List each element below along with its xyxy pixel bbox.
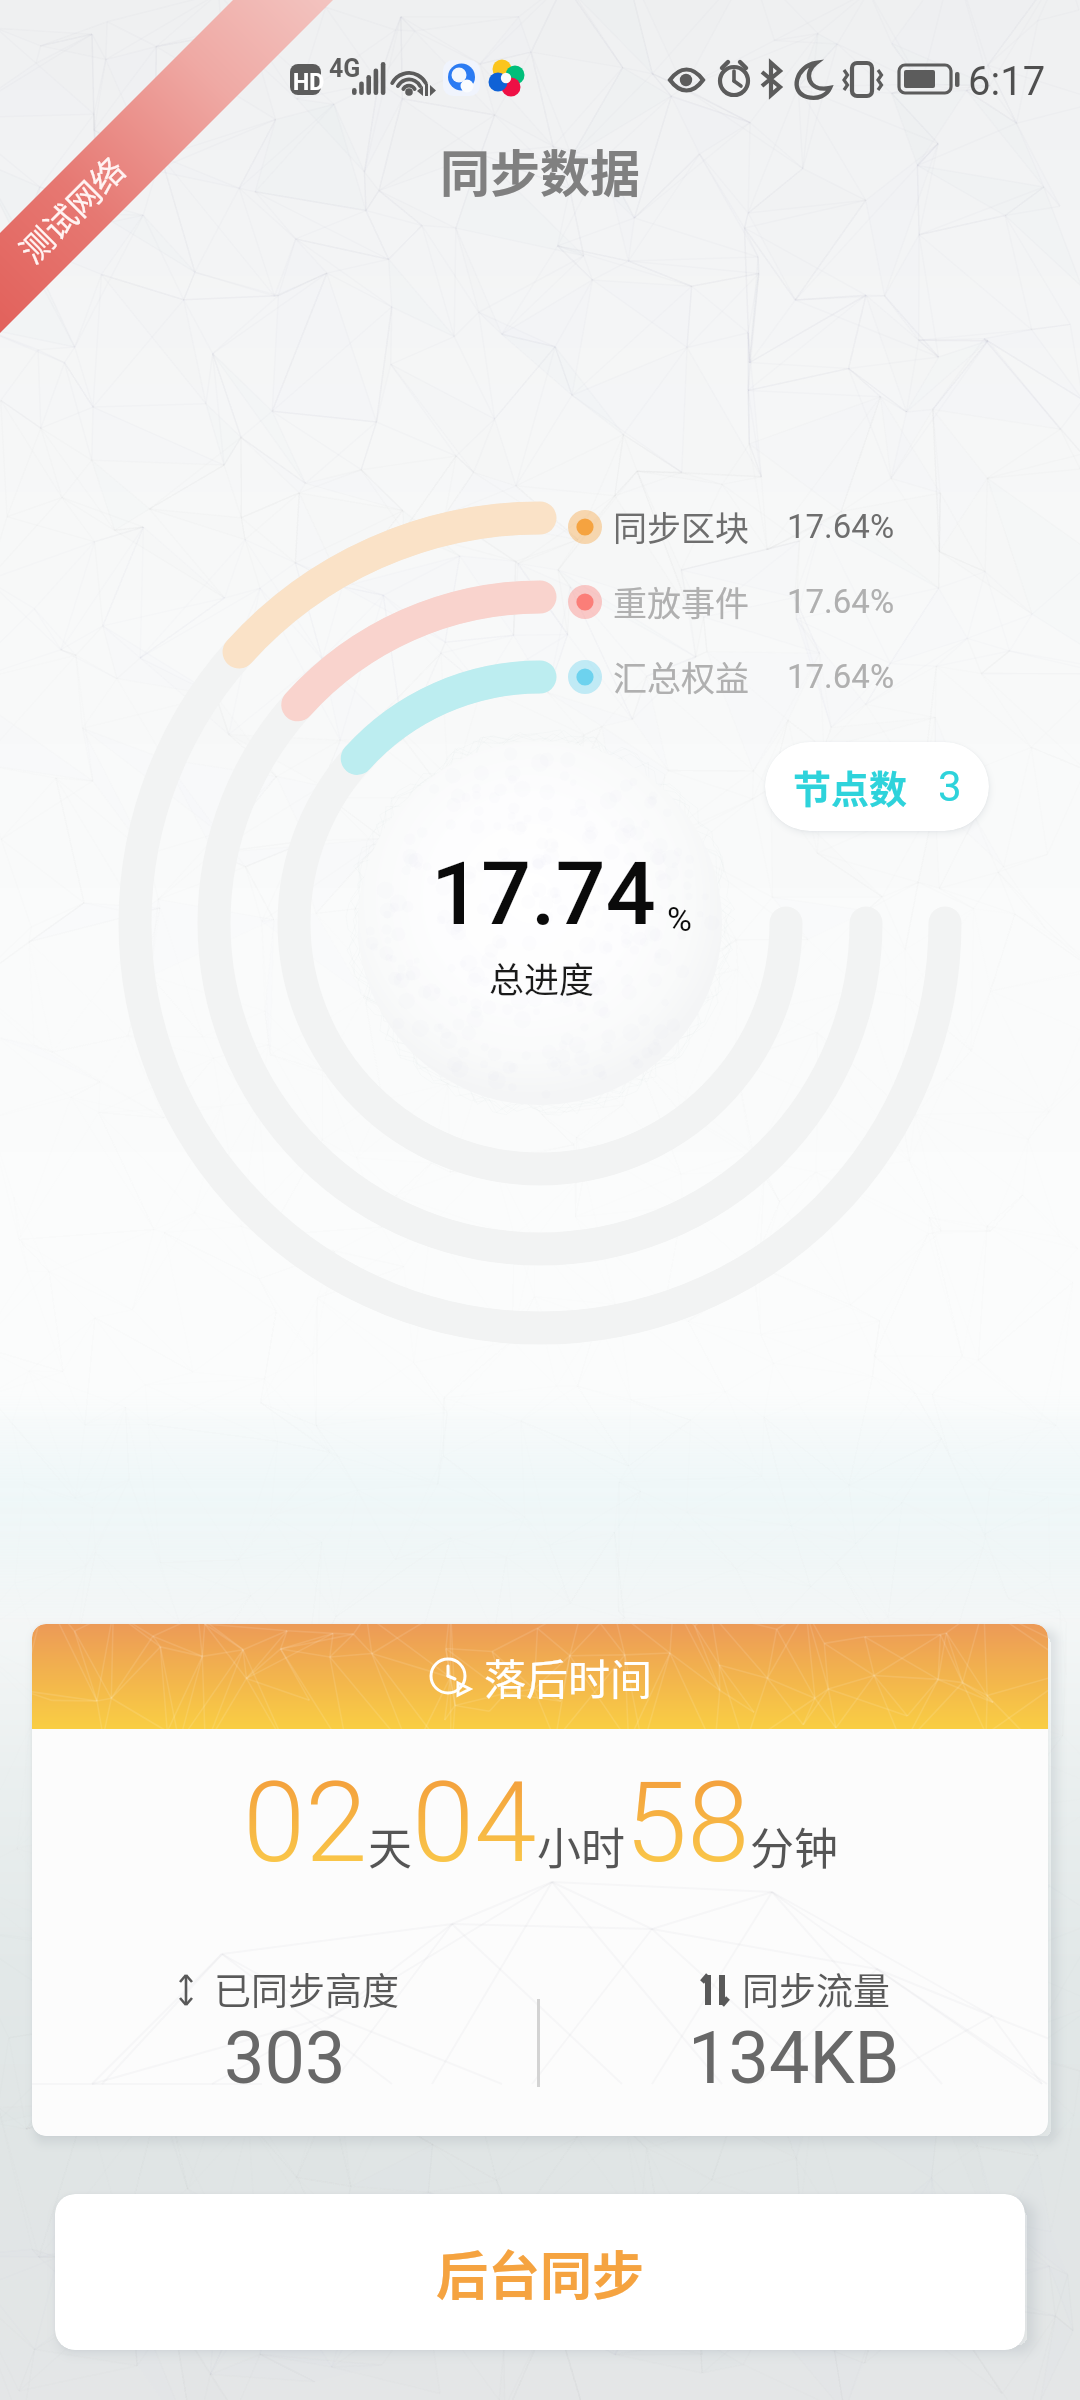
- staticText: 58: [625, 1757, 750, 1888]
- staticText: 重放事件: [613, 577, 749, 626]
- staticText: 总进度: [489, 952, 595, 1003]
- staticText: 小时: [537, 1814, 625, 1878]
- staticText: 已同步高度: [214, 1962, 399, 2016]
- staticText: 17.64%: [787, 507, 895, 546]
- staticText: 303: [224, 2016, 346, 2100]
- staticText: 134KB: [688, 2016, 900, 2100]
- staticText: 落后时间: [484, 1646, 653, 1707]
- staticText: 17.74: [431, 842, 656, 945]
- button[interactable]: 后台同步: [55, 2194, 1025, 2350]
- staticText: 同步数据: [0, 134, 1080, 206]
- button[interactable]: 节点数: [765, 742, 989, 831]
- staticText: 3: [938, 762, 962, 811]
- staticText: 6:17: [968, 58, 1046, 105]
- staticText: 同步流量: [742, 1962, 890, 2016]
- staticText: %: [667, 899, 692, 939]
- staticText: 天: [368, 1814, 412, 1878]
- staticText: 02: [243, 1757, 368, 1888]
- staticText: HD: [293, 69, 325, 96]
- staticText: 分钟: [750, 1814, 838, 1878]
- button[interactable]: 落后时间: [32, 1624, 1048, 2136]
- staticText: 4G: [329, 54, 361, 83]
- staticText: 同步区块: [613, 502, 749, 551]
- staticText: 节点数: [793, 759, 908, 814]
- staticText: 汇总权益: [613, 652, 749, 701]
- staticText: 17.64%: [787, 582, 895, 621]
- staticText: 17.64%: [787, 657, 895, 696]
- staticText: 04: [412, 1757, 537, 1888]
- staticText: 测试网络: [7, 145, 135, 273]
- staticText: 后台同步: [436, 2235, 645, 2310]
